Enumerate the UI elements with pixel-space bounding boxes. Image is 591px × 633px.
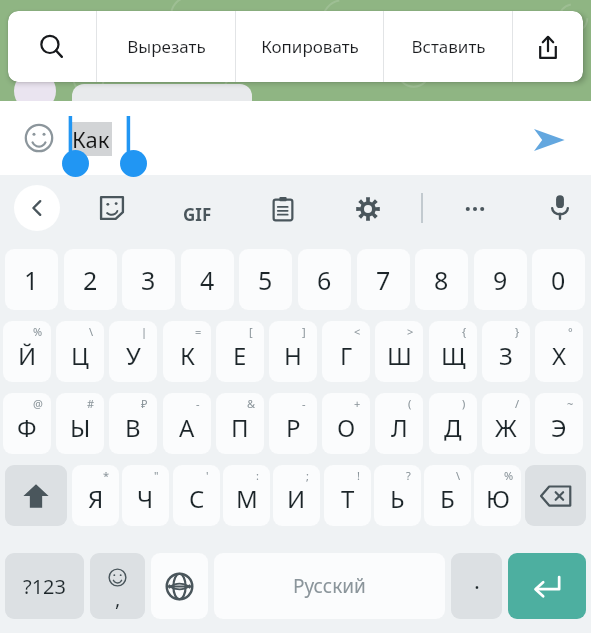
button[interactable]: 2 <box>64 249 117 310</box>
button[interactable]: GIF <box>172 189 222 239</box>
button[interactable]: Русский <box>214 553 445 619</box>
button[interactable]: Stickers <box>93 189 131 227</box>
staticText: В <box>125 411 141 444</box>
button[interactable]: ! <box>324 465 371 526</box>
button[interactable]: = <box>163 321 211 382</box>
button[interactable]: More options <box>455 189 495 229</box>
staticText: * <box>103 468 110 483</box>
staticText: Вырезать <box>127 35 206 58</box>
staticText: Г <box>340 339 353 372</box>
staticText: Л <box>391 411 408 444</box>
staticText: , <box>115 585 121 612</box>
staticText: Как <box>72 124 110 154</box>
staticText: ! <box>357 468 360 483</box>
button[interactable]: 8 <box>415 249 468 310</box>
button[interactable]: " <box>122 465 169 526</box>
button[interactable]: Change language <box>151 553 208 619</box>
button[interactable]: - <box>163 393 211 454</box>
button[interactable]: ] <box>269 321 317 382</box>
staticText: Ю <box>486 482 510 515</box>
staticText: Ф <box>17 411 37 444</box>
button[interactable]: 4 <box>181 249 234 310</box>
button[interactable]: Shift <box>5 465 67 526</box>
staticText: 6 <box>317 263 332 297</box>
staticText: Э <box>551 411 567 444</box>
button[interactable]: # <box>56 393 104 454</box>
staticText: У <box>126 339 141 372</box>
button[interactable]: Back <box>14 185 60 231</box>
staticText: С <box>189 482 205 515</box>
button[interactable]: + <box>322 393 370 454</box>
button[interactable]: ?123 <box>5 553 84 619</box>
button[interactable]: ? <box>374 465 421 526</box>
button[interactable]: \ <box>424 465 471 526</box>
staticText: Я <box>88 482 104 515</box>
staticText: 8 <box>434 263 449 297</box>
staticText: 9 <box>493 263 508 297</box>
button[interactable]: 5 <box>239 249 292 310</box>
button[interactable]: 1 <box>5 249 58 310</box>
button[interactable]: } <box>482 321 530 382</box>
staticText: < <box>354 324 361 339</box>
staticText: % <box>33 324 43 339</box>
button[interactable]: [ <box>216 321 264 382</box>
button[interactable]: - <box>269 393 317 454</box>
button[interactable]: & <box>216 393 264 454</box>
button[interactable]: Emoji <box>22 121 56 155</box>
staticText: Ц <box>71 339 89 372</box>
button[interactable]: < <box>322 321 370 382</box>
button[interactable]: ' <box>173 465 220 526</box>
button[interactable]: 0 <box>532 249 585 310</box>
staticText: [ <box>249 324 253 339</box>
staticText: О <box>337 411 356 444</box>
button[interactable]: ~ <box>535 393 583 454</box>
button[interactable]: Emoji and comma <box>90 553 145 619</box>
button[interactable]: Settings <box>348 189 388 229</box>
staticText: % <box>504 468 514 483</box>
button[interactable]: . <box>451 553 502 619</box>
button[interactable]: Вырезать <box>97 11 235 82</box>
staticText: - <box>196 396 200 411</box>
button[interactable]: : <box>223 465 270 526</box>
staticText: ' <box>206 468 209 483</box>
staticText: 2 <box>83 263 98 297</box>
button[interactable]: ₽ <box>109 393 157 454</box>
button[interactable]: ) <box>429 393 477 454</box>
button[interactable]: Clipboard <box>263 189 303 229</box>
staticText: Ж <box>495 411 517 444</box>
staticText: Х <box>552 339 567 372</box>
button[interactable]: % <box>474 465 521 526</box>
button[interactable]: 6 <box>298 249 351 310</box>
button[interactable]: | <box>109 321 157 382</box>
staticText: ( <box>408 396 412 411</box>
button[interactable]: / <box>482 393 530 454</box>
button[interactable]: Копировать <box>236 11 383 82</box>
button[interactable]: 3 <box>122 249 175 310</box>
staticText: Т <box>341 482 355 515</box>
staticText: 4 <box>200 263 215 297</box>
button[interactable]: @ <box>3 393 51 454</box>
staticText: Копировать <box>261 35 359 58</box>
staticText: GIF <box>183 203 212 226</box>
button[interactable]: 9 <box>474 249 527 310</box>
button[interactable]: > <box>375 321 423 382</box>
staticText: Б <box>440 482 455 515</box>
button[interactable]: Voice input <box>540 187 580 227</box>
button[interactable]: ; <box>273 465 320 526</box>
staticText: # <box>87 396 95 411</box>
button[interactable]: * <box>72 465 119 526</box>
button[interactable]: Search <box>8 11 96 82</box>
button[interactable]: { <box>429 321 477 382</box>
button[interactable]: \ <box>56 321 104 382</box>
button[interactable]: Enter <box>508 553 586 619</box>
button[interactable]: Share <box>513 11 583 82</box>
button[interactable]: ( <box>375 393 423 454</box>
button[interactable]: Send <box>528 119 570 161</box>
button[interactable]: Вставить <box>384 11 512 82</box>
button[interactable]: Backspace <box>525 465 586 526</box>
button[interactable]: 7 <box>357 249 410 310</box>
button[interactable]: ° <box>535 321 583 382</box>
button[interactable]: % <box>3 321 51 382</box>
staticText: \ <box>89 324 94 339</box>
staticText: " <box>154 468 159 483</box>
